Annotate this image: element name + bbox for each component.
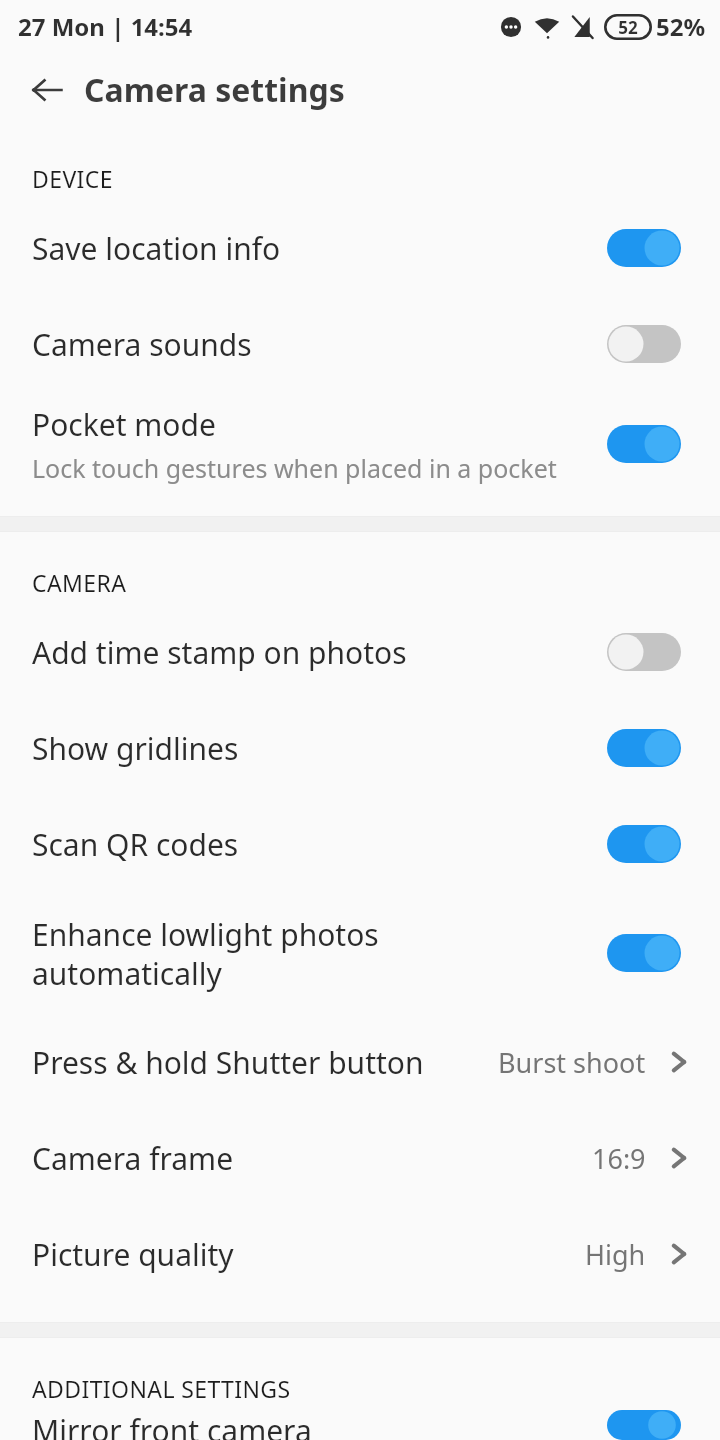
- staticText: 27 Mon | 14:54: [18, 10, 193, 43]
- button[interactable]: Picture quality: [0, 1206, 720, 1302]
- button[interactable]: Off: [607, 325, 681, 363]
- staticText: 16:9: [592, 1140, 646, 1177]
- button[interactable]: Back: [18, 61, 76, 119]
- staticText: Mirror front camera: [32, 1410, 312, 1440]
- staticText: Camera settings: [84, 68, 345, 112]
- staticText: Add time stamp on photos: [32, 632, 407, 673]
- staticText: Enhance lowlight photos automatically: [32, 914, 379, 993]
- staticText: 52: [618, 16, 638, 39]
- staticText: Lock touch gestures when placed in a poc…: [32, 451, 557, 485]
- button[interactable]: On: [607, 729, 681, 767]
- button[interactable]: Add time stamp on photos: [0, 604, 720, 700]
- button[interactable]: On: [607, 229, 681, 267]
- button[interactable]: On: [607, 825, 681, 863]
- staticText: Scan QR codes: [32, 824, 239, 865]
- staticText: 52%: [656, 10, 706, 43]
- button[interactable]: Off: [607, 633, 681, 671]
- staticText: Press & hold Shutter button: [32, 1042, 498, 1083]
- button[interactable]: Save location info: [0, 200, 720, 296]
- button[interactable]: Pocket mode: [0, 392, 720, 496]
- button[interactable]: On: [607, 1410, 681, 1440]
- button[interactable]: On: [607, 934, 681, 972]
- button[interactable]: Press & hold Shutter button: [0, 1014, 720, 1110]
- staticText: Camera frame: [32, 1138, 592, 1179]
- button[interactable]: Enhance lowlight photos automatically: [0, 892, 720, 1014]
- button[interactable]: Camera frame: [0, 1110, 720, 1206]
- button[interactable]: On: [607, 425, 681, 463]
- staticText: Pocket mode: [32, 404, 216, 445]
- button[interactable]: Show gridlines: [0, 700, 720, 796]
- staticText: CAMERA: [32, 567, 127, 598]
- staticText: ADDITIONAL SETTINGS: [32, 1373, 291, 1404]
- button[interactable]: Camera sounds: [0, 296, 720, 392]
- staticText: Picture quality: [32, 1234, 585, 1275]
- staticText: High: [585, 1236, 646, 1273]
- button[interactable]: Mirror front camera: [0, 1410, 720, 1440]
- staticText: Camera sounds: [32, 324, 252, 365]
- button[interactable]: Scan QR codes: [0, 796, 720, 892]
- staticText: Show gridlines: [32, 728, 239, 769]
- staticText: Burst shoot: [498, 1044, 646, 1081]
- staticText: DEVICE: [32, 163, 113, 194]
- staticText: Save location info: [32, 228, 281, 269]
